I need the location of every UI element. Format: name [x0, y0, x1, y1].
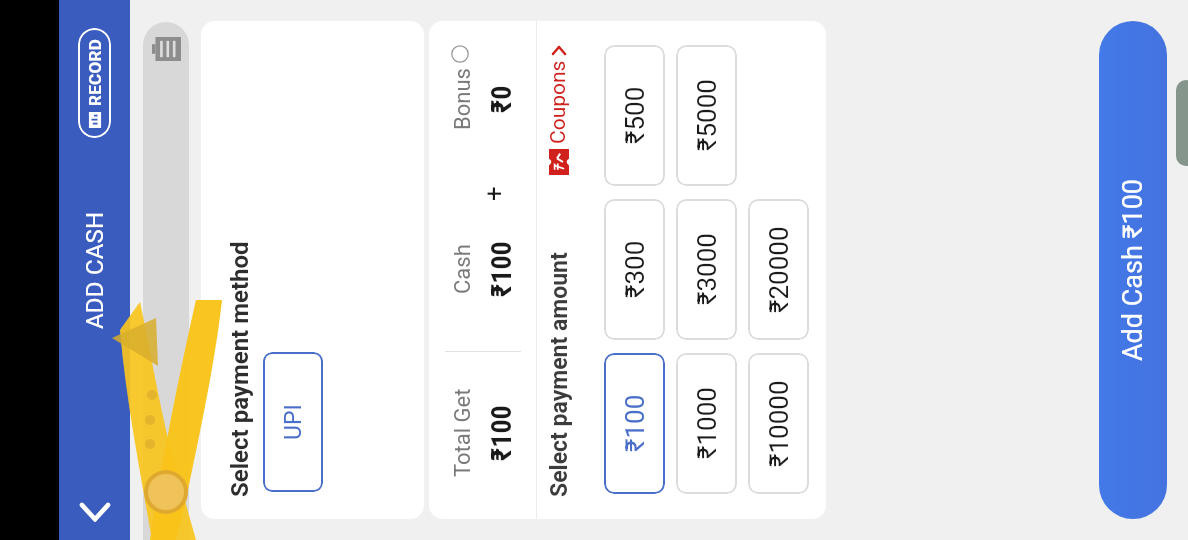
button[interactable]: ₹20000	[748, 199, 809, 340]
button[interactable]: ₹300	[604, 199, 665, 340]
staticText: ₹100	[620, 394, 650, 452]
button[interactable]: ₹10000	[748, 353, 809, 494]
button[interactable]: ₹1000	[676, 353, 737, 494]
button[interactable]: ₹5000	[676, 45, 737, 186]
staticText: ₹500	[620, 86, 650, 144]
staticText: Total Get	[450, 388, 476, 477]
staticText: ADD CASH	[81, 211, 109, 329]
button[interactable]: RECORD	[78, 28, 111, 138]
staticText: ₹1000	[692, 387, 722, 459]
staticText: ₹100	[485, 405, 518, 461]
staticText: Cash	[450, 244, 476, 294]
staticText: UPI	[280, 404, 307, 440]
staticText: Bonus	[450, 68, 476, 130]
staticText: ₹3000	[692, 233, 722, 305]
button[interactable]: Back	[71, 489, 119, 537]
staticText: Select payment amount	[546, 252, 573, 497]
button[interactable]: Coupons	[543, 43, 574, 178]
staticText: ₹300	[620, 240, 650, 298]
staticText: ₹100	[485, 241, 518, 297]
button[interactable]: ₹500	[604, 45, 665, 186]
button[interactable]: Add Cash ₹100	[1099, 21, 1167, 519]
staticText: ₹5000	[692, 79, 722, 151]
staticText: +	[479, 186, 509, 201]
staticText: ₹0	[485, 85, 518, 113]
staticText: RECORD	[85, 38, 105, 106]
other: Screen recorder toolbar	[143, 22, 189, 540]
staticText: ₹20000	[764, 226, 794, 313]
staticText: Coupons	[546, 60, 571, 144]
staticText: ₹10000	[764, 380, 794, 467]
button[interactable]: ₹100	[604, 353, 665, 494]
staticText: Select payment method	[226, 241, 254, 497]
button[interactable]: ₹3000	[676, 199, 737, 340]
staticText: Add Cash ₹100	[1117, 178, 1149, 361]
button[interactable]: UPI	[263, 352, 323, 492]
